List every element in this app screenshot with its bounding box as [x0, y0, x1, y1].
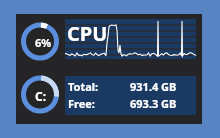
button[interactable]: [16, 14, 202, 124]
staticText: CPU: [67, 20, 108, 47]
staticText: 6%: [35, 35, 52, 50]
staticText: 693.3 GB: [130, 96, 177, 111]
staticText: Free:: [68, 96, 95, 111]
staticText: C:: [35, 88, 47, 104]
button[interactable]: [65, 19, 196, 59]
staticText: 931.4 GB: [130, 79, 177, 94]
other: CPU usage 6 percent: [0, 0, 220, 138]
other: Disk C usage: [0, 0, 220, 138]
button[interactable]: Total:: [65, 76, 196, 115]
staticText: Total:: [68, 79, 99, 94]
